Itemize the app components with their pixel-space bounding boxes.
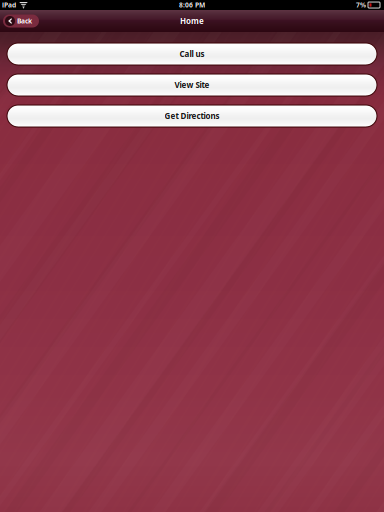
staticText: Get Directions (164, 111, 219, 121)
staticText: 8:06 PM (179, 1, 205, 9)
staticText: Home (180, 16, 204, 26)
staticText: Back (17, 17, 32, 25)
button[interactable]: Back (3, 14, 39, 27)
button[interactable]: Get Directions (7, 105, 377, 127)
button[interactable]: View Site (7, 74, 377, 96)
staticText: iPad (2, 1, 16, 9)
button[interactable]: Call us (7, 43, 377, 65)
staticText: Call us (179, 49, 204, 59)
staticText: View Site (174, 80, 209, 90)
staticText: 7% (356, 1, 366, 9)
